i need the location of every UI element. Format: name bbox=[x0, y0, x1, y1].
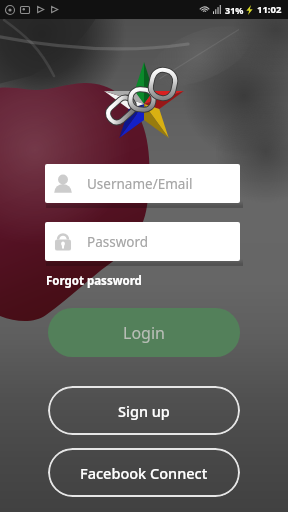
staticText: 31% bbox=[225, 4, 244, 16]
staticText: Password bbox=[87, 233, 149, 251]
staticText: Sign up bbox=[118, 401, 170, 421]
staticText: Login bbox=[123, 322, 165, 344]
button[interactable]: Login bbox=[48, 308, 240, 357]
staticText: Facebook Connect bbox=[80, 463, 208, 483]
button[interactable]: Sign up bbox=[48, 386, 240, 435]
button[interactable]: Facebook Connect bbox=[48, 448, 240, 497]
button[interactable]: Password bbox=[45, 222, 240, 261]
button[interactable]: Username/Email bbox=[45, 164, 240, 203]
staticText: 11:02 bbox=[257, 3, 282, 16]
button[interactable]: Forgot password bbox=[46, 273, 142, 289]
staticText: Username/Email bbox=[87, 175, 193, 193]
